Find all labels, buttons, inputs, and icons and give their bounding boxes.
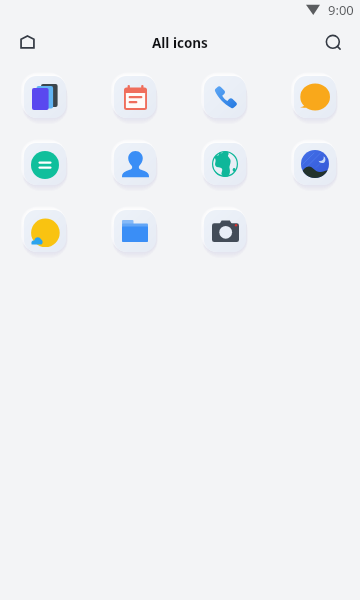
button[interactable] [197,69,253,125]
button[interactable] [17,136,73,192]
button[interactable] [197,136,253,192]
button[interactable]: Search [313,23,351,61]
button[interactable] [107,136,163,192]
button[interactable] [287,136,343,192]
staticText: 9:00 [328,1,354,19]
button[interactable] [17,203,73,259]
button[interactable] [107,69,163,125]
button[interactable] [17,69,73,125]
button[interactable] [287,69,343,125]
button[interactable] [197,203,253,259]
button[interactable] [107,203,163,259]
staticText: All icons [152,34,208,52]
button[interactable]: Home [8,23,46,61]
